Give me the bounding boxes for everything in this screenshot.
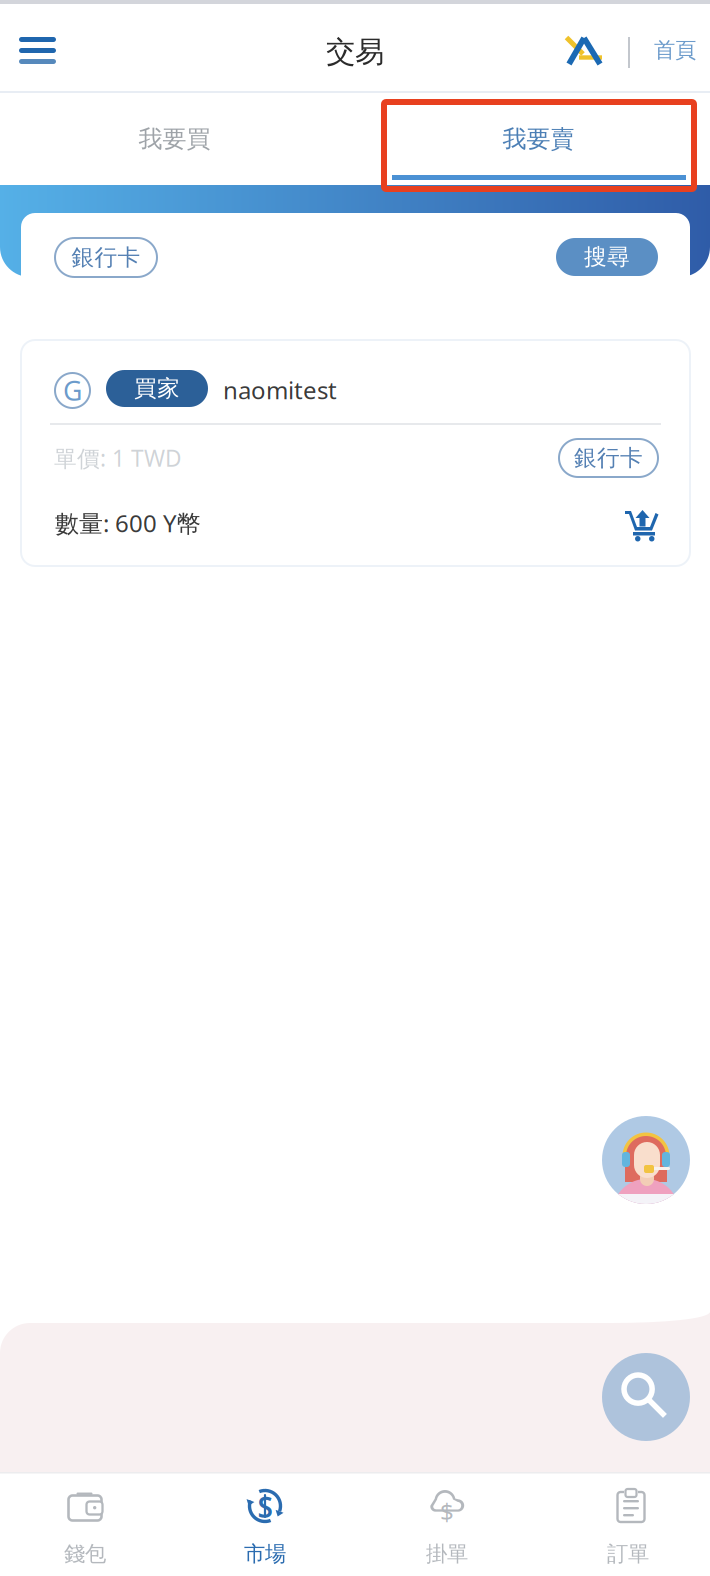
staticText: 交易	[326, 34, 384, 70]
button[interactable]: Menu	[0, 4, 76, 93]
staticText: 搜尋	[584, 243, 630, 271]
button[interactable]: $	[372, 1472, 522, 1576]
staticText: S	[257, 1488, 272, 1526]
staticText: 單價: 1 TWD	[54, 443, 182, 473]
button[interactable]: 銀行卡	[55, 238, 157, 277]
staticText: 我要賣	[502, 124, 574, 154]
staticText: 錢包	[64, 1541, 106, 1567]
button[interactable]: 訂單	[553, 1472, 703, 1576]
button[interactable]: S	[190, 1472, 340, 1576]
staticText: 數量: 600 Y幣	[55, 507, 201, 539]
staticText: $	[440, 1495, 454, 1527]
button[interactable]: Customer support	[602, 1116, 690, 1204]
staticText: 銀行卡	[574, 444, 643, 472]
staticText: naomitest	[223, 374, 337, 406]
button[interactable]: G	[21, 340, 690, 566]
staticText: 首頁	[654, 37, 696, 63]
staticText: 市場	[244, 1541, 286, 1567]
staticText: G	[63, 373, 82, 408]
staticText: 掛單	[426, 1541, 468, 1567]
button[interactable]: 我要買	[0, 93, 355, 185]
button[interactable]: Search	[602, 1353, 690, 1441]
button[interactable]: 搜尋	[556, 238, 658, 276]
staticText: 訂單	[607, 1541, 649, 1567]
button[interactable]: 首頁	[564, 4, 710, 93]
staticText: 銀行卡	[71, 244, 140, 271]
staticText: 我要買	[138, 124, 210, 154]
button[interactable]: 我要賣	[355, 93, 710, 185]
staticText: 買家	[134, 375, 180, 402]
button[interactable]: 錢包	[10, 1472, 160, 1576]
